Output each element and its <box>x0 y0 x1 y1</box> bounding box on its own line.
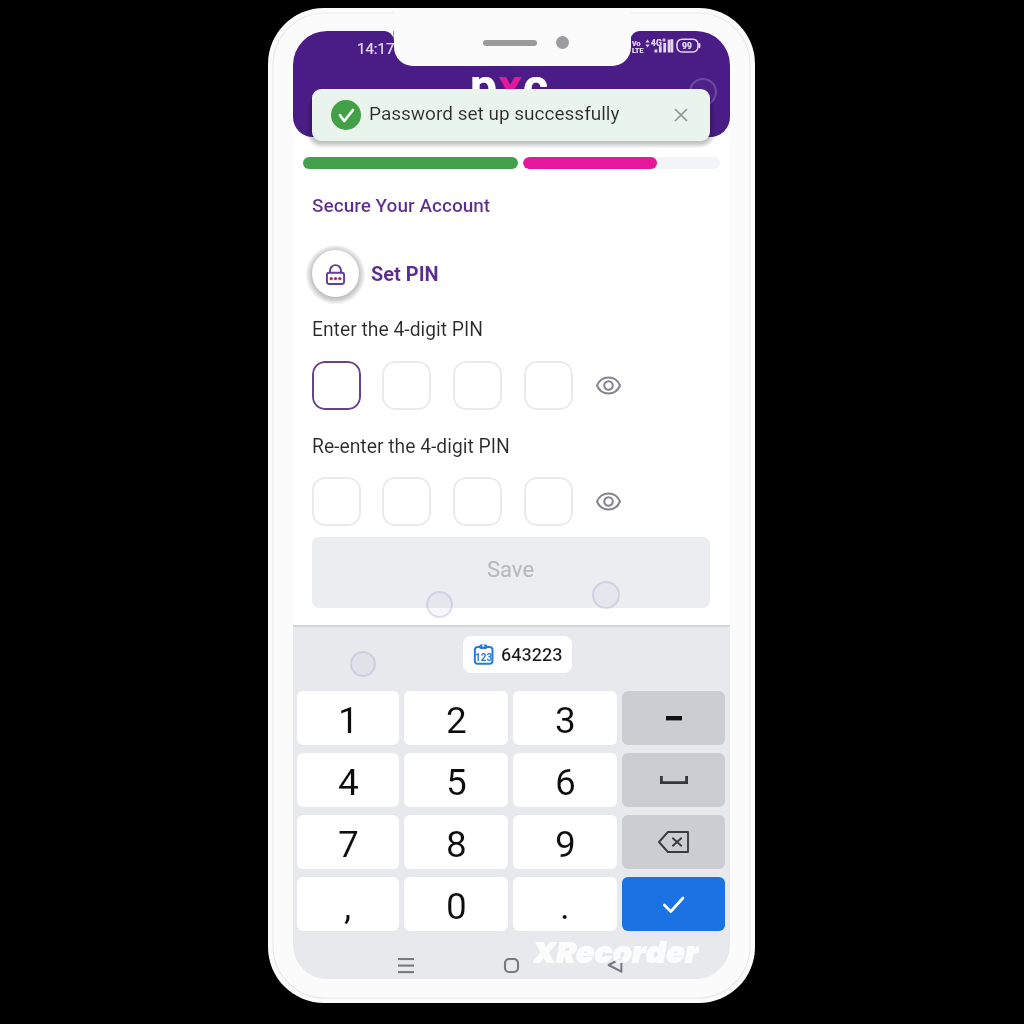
staticText: 99 <box>682 41 692 51</box>
staticText: 4G <box>651 38 662 48</box>
button[interactable]: 0 <box>404 877 508 931</box>
staticText: Set PIN <box>371 262 439 285</box>
staticText: 7 <box>338 823 359 866</box>
button[interactable] <box>524 361 573 410</box>
button[interactable]: Show PIN <box>590 484 626 518</box>
staticText: 14:17 <box>357 40 395 58</box>
button[interactable] <box>382 477 431 526</box>
button[interactable] <box>312 361 361 410</box>
button[interactable]: 1 <box>297 691 399 745</box>
staticText: 1 <box>338 699 359 742</box>
button[interactable]: 7 <box>297 815 399 869</box>
staticText: x <box>498 58 523 114</box>
button[interactable] <box>622 877 725 931</box>
staticText: 4 <box>338 761 359 804</box>
staticText: 123 <box>475 652 493 664</box>
button[interactable]: 2 <box>404 691 508 745</box>
staticText: 2 <box>446 699 467 742</box>
button[interactable]: 9 <box>513 815 617 869</box>
button[interactable]: Set PIN <box>312 250 439 297</box>
staticText: Password set up successfully <box>369 102 620 124</box>
button[interactable] <box>524 477 573 526</box>
button[interactable] <box>312 477 361 526</box>
staticText: 0 <box>446 885 467 928</box>
staticText: Re-enter the 4-digit PIN <box>312 435 510 458</box>
button[interactable]: 5 <box>404 753 508 807</box>
staticText: Secure Your Account <box>312 194 491 216</box>
button[interactable] <box>382 361 431 410</box>
button[interactable] <box>453 477 502 526</box>
button[interactable]: Back <box>601 951 629 979</box>
staticText: 9 <box>555 823 576 866</box>
button[interactable]: Save <box>312 537 710 608</box>
button[interactable]: Dismiss <box>665 99 697 131</box>
button[interactable] <box>453 361 502 410</box>
button[interactable]: 123 <box>463 636 572 673</box>
button[interactable]: Show PIN <box>590 368 626 402</box>
staticText: Vo <box>632 40 641 48</box>
staticText: p <box>470 58 498 114</box>
button[interactable]: 8 <box>404 815 508 869</box>
staticText: . <box>560 885 570 928</box>
staticText: XRecorder <box>533 932 699 971</box>
staticText: , <box>344 885 352 928</box>
staticText: 3 <box>555 699 576 742</box>
button[interactable]: Recent apps <box>392 951 420 979</box>
staticText: Save <box>487 557 535 583</box>
button[interactable]: Home <box>497 951 525 979</box>
button[interactable] <box>622 753 725 807</box>
button[interactable]: 6 <box>513 753 617 807</box>
button[interactable] <box>622 815 725 869</box>
button[interactable] <box>622 691 725 745</box>
button[interactable]: 4 <box>297 753 399 807</box>
staticText: 5 <box>446 761 467 804</box>
staticText: 6 <box>555 761 576 804</box>
button[interactable]: , <box>297 877 399 931</box>
staticText: 8 <box>446 823 467 866</box>
staticText: 643223 <box>501 644 563 665</box>
button[interactable]: . <box>513 877 617 931</box>
staticText: c <box>523 58 549 114</box>
button[interactable]: 3 <box>513 691 617 745</box>
staticText: LTE <box>632 47 644 55</box>
staticText: Enter the 4-digit PIN <box>312 318 484 341</box>
